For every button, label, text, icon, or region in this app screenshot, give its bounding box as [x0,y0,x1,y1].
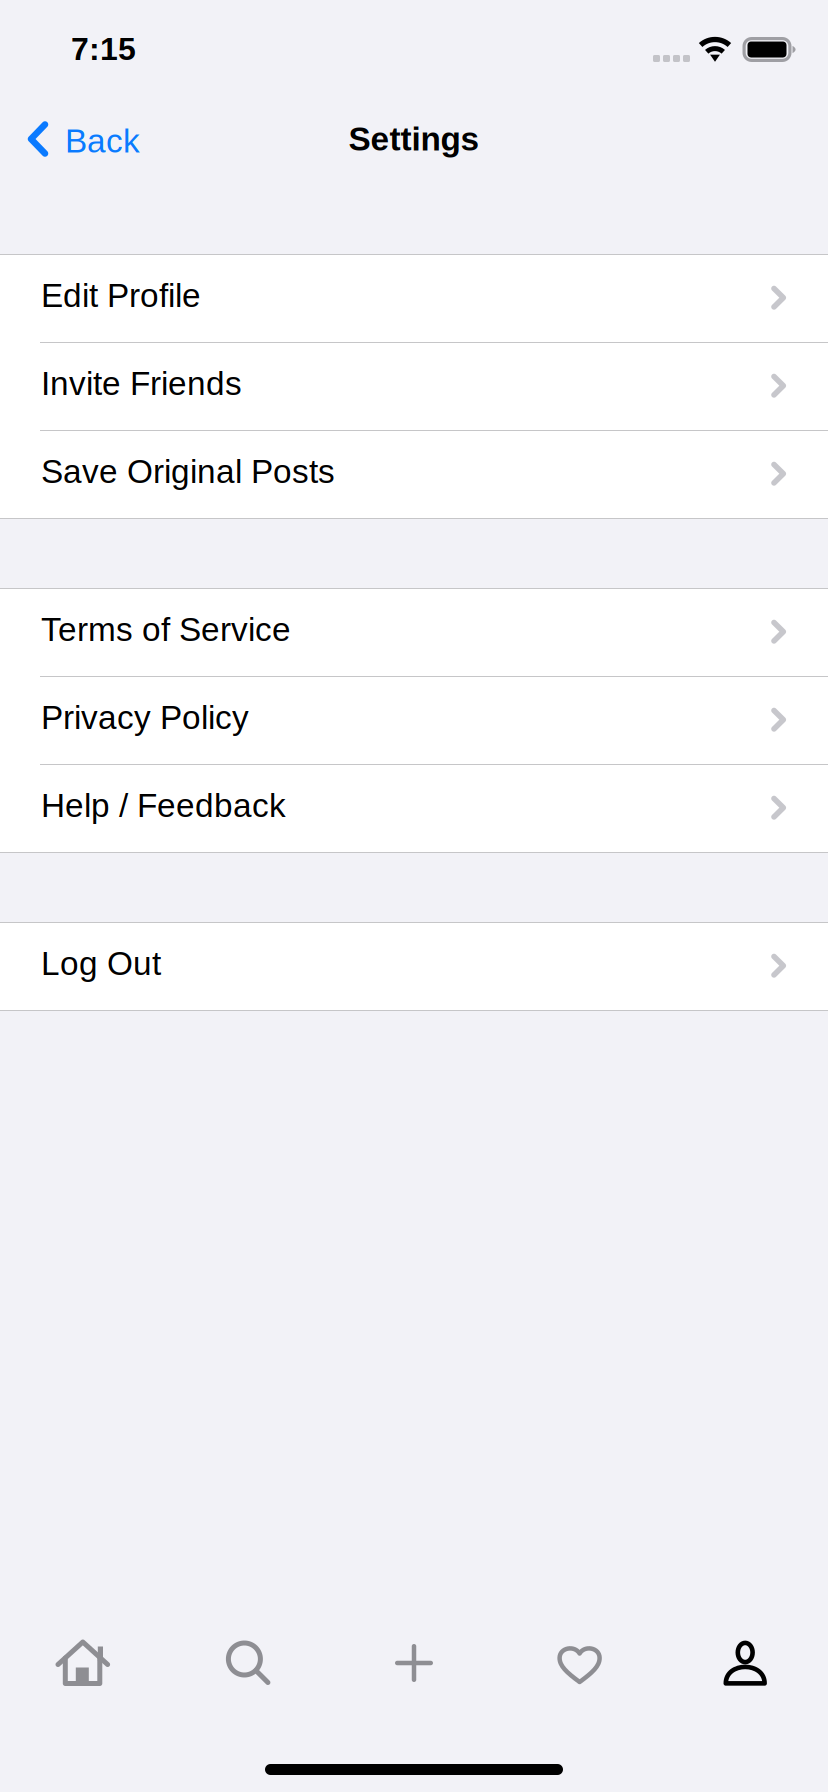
button[interactable]: Home [0,1639,166,1687]
staticText: Privacy Policy [41,699,249,736]
staticText: Help / Feedback [41,787,286,824]
button[interactable]: Save Original Posts [0,431,828,518]
button[interactable]: Create [331,1641,497,1685]
staticText: Back [65,122,140,160]
button[interactable]: Profile [662,1640,828,1686]
staticText: Terms of Service [41,611,291,648]
button[interactable]: Terms of Service [0,589,828,676]
staticText: Edit Profile [41,277,201,314]
button[interactable]: Edit Profile [0,255,828,342]
button[interactable]: Activity [497,1642,662,1684]
staticText: Settings [348,120,479,158]
button[interactable]: Back [0,99,158,187]
button[interactable]: Help / Feedback [0,765,828,852]
button[interactable]: Log Out [0,923,828,1010]
staticText: Save Original Posts [41,453,335,490]
staticText: 7:15 [71,31,136,67]
button[interactable]: Search [166,1640,331,1685]
staticText: Log Out [41,945,161,982]
staticText: Invite Friends [41,365,242,402]
button[interactable]: Privacy Policy [0,677,828,764]
button[interactable]: Invite Friends [0,343,828,430]
